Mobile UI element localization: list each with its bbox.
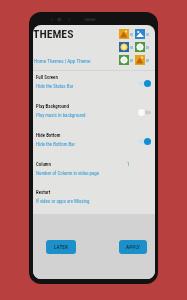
staticText: Hide the Status Bar (36, 83, 74, 89)
staticText: Hide Bottom (36, 132, 61, 138)
staticText: LATER (54, 244, 68, 250)
staticText: Column (36, 161, 51, 167)
button[interactable]: Hide Bottom (33, 128, 155, 157)
button[interactable]: LATER (46, 240, 76, 254)
staticText: 1 (127, 161, 130, 167)
button[interactable] (135, 55, 145, 65)
button[interactable]: Restart (33, 185, 155, 214)
button[interactable]: Play Background (33, 99, 155, 128)
staticText: Restart (36, 189, 51, 195)
button[interactable]: APPLY (119, 240, 147, 254)
button[interactable]: Home Themes | App Theme (34, 58, 91, 64)
button[interactable]: Switch on (138, 80, 151, 87)
staticText: If video or apps are Missing (36, 198, 90, 204)
staticText: THEMES (33, 27, 74, 41)
staticText: Full Screen (36, 74, 58, 80)
button[interactable]: Full Screen (33, 70, 155, 99)
staticText: APPLY (126, 244, 140, 250)
button[interactable] (119, 29, 129, 39)
staticText: Number of Column in video page (36, 170, 99, 176)
staticText: Hide the Bottom Bar (36, 141, 75, 147)
staticText: Play music in background (36, 112, 86, 118)
button[interactable]: Switch off (138, 109, 151, 116)
button[interactable] (119, 42, 129, 52)
button[interactable]: Column (33, 157, 155, 186)
button[interactable] (135, 42, 145, 52)
button[interactable] (135, 29, 145, 39)
button[interactable] (119, 55, 129, 65)
button[interactable]: Switch on (138, 138, 151, 145)
staticText: Play Background (36, 103, 69, 109)
